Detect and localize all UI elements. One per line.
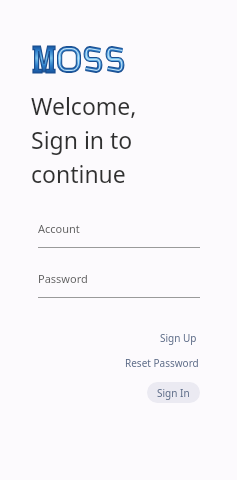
button[interactable]: Sign In (147, 382, 200, 403)
staticText: Reset Password (125, 356, 199, 370)
staticText: Sign In (157, 386, 190, 400)
button[interactable]: Reset Password (125, 356, 199, 370)
staticText: Sign Up (160, 331, 197, 345)
button[interactable]: Sign Up (160, 331, 197, 345)
staticText: Welcome, Sign in to continue (31, 90, 137, 189)
staticText: Account (38, 221, 80, 236)
staticText: Password (38, 271, 88, 286)
